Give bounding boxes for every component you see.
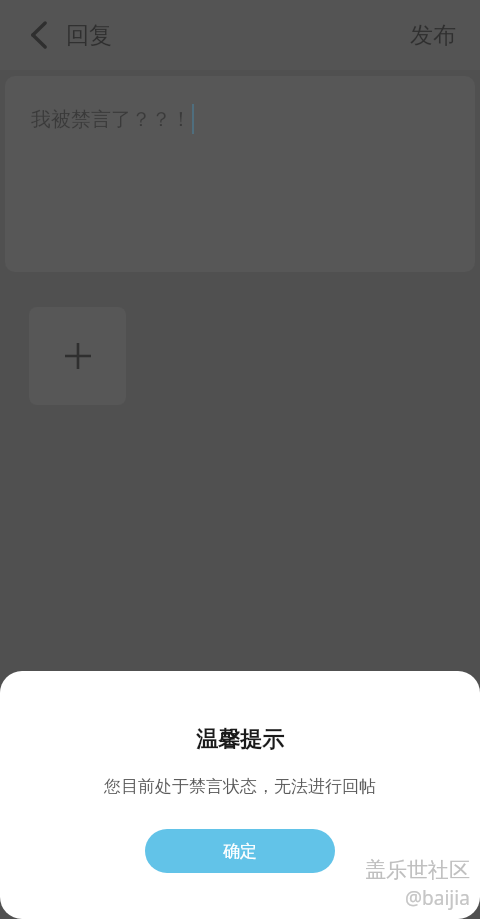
staticText: 盖乐世社区 (365, 857, 470, 883)
button[interactable]: Add image (29, 307, 126, 405)
staticText: 确定 (223, 841, 257, 862)
staticText: 温馨提示 (196, 726, 284, 754)
staticText: @baijia (405, 885, 470, 911)
staticText: 回复 (66, 21, 112, 50)
other: Back (28, 20, 50, 50)
button[interactable]: Back (0, 0, 126, 70)
staticText: 我被禁言了？？！ (31, 107, 191, 132)
staticText: 您目前处于禁言状态，无法进行回帖 (104, 776, 376, 797)
button[interactable]: 发布 (386, 0, 480, 70)
button[interactable]: 确定 (145, 829, 335, 873)
staticText: 发布 (410, 21, 456, 50)
